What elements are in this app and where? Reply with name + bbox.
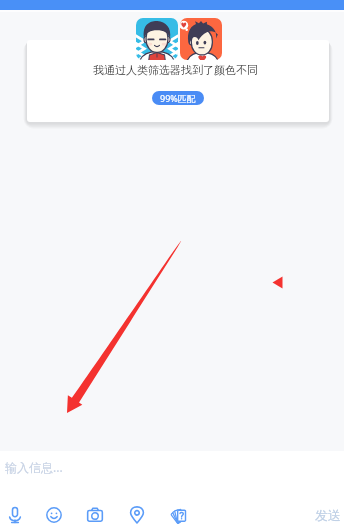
staticText: 发送	[315, 507, 341, 523]
staticText: 99%匹配	[160, 92, 196, 104]
button[interactable]: 发送	[301, 503, 344, 527]
button[interactable]	[27, 40, 329, 122]
button[interactable]: 99%匹配	[152, 91, 204, 105]
button[interactable]: Voice message	[0, 500, 30, 530]
button[interactable]: Location	[122, 500, 152, 530]
button[interactable]: 输入信息...	[5, 451, 344, 482]
staticText: 我通过人类筛选器找到了颜色不同	[93, 63, 258, 77]
button[interactable]: Camera	[80, 500, 110, 530]
staticText: 输入信息...	[5, 459, 63, 475]
button[interactable]: Emoji	[39, 500, 69, 530]
button[interactable]: Cards	[163, 500, 193, 530]
